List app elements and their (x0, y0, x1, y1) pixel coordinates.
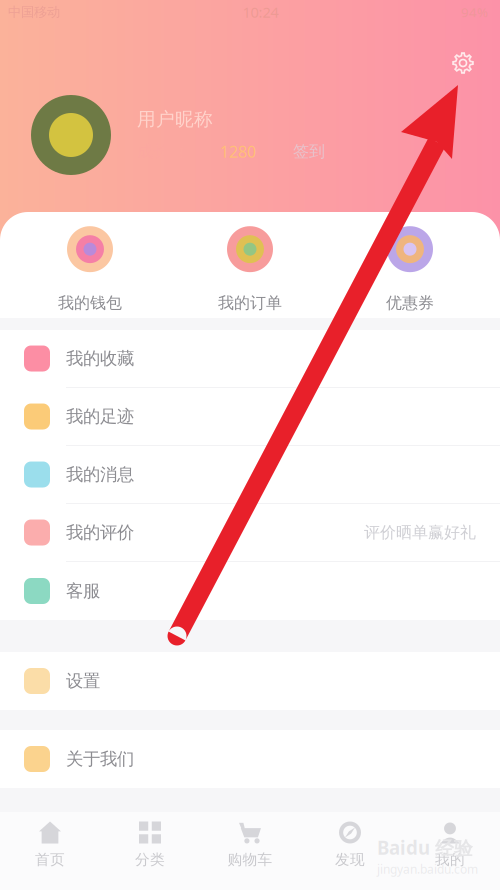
staticText: 我的订单 (218, 293, 282, 313)
button[interactable]: 我的消息 (0, 446, 500, 504)
button[interactable]: 我的钱包 (10, 226, 170, 313)
button[interactable]: 首页 (0, 802, 100, 890)
staticText: 购物车 (227, 850, 272, 868)
staticText: 分类 (135, 850, 165, 868)
staticText: 我的足迹 (66, 406, 134, 427)
button[interactable]: 关于我们 (0, 730, 500, 788)
button[interactable]: 客服 (0, 562, 500, 620)
staticText: 我的 (435, 850, 465, 868)
staticText: 设置 (66, 670, 100, 692)
button[interactable]: 发现 (300, 802, 400, 890)
staticText: 中国移动 (8, 4, 60, 20)
staticText: 我的消息 (66, 464, 134, 485)
staticText: 优惠券 (386, 293, 434, 313)
button[interactable]: 设置 (0, 652, 500, 710)
button[interactable]: 我的评价 (0, 504, 500, 562)
button[interactable]: 分类 (100, 802, 200, 890)
staticText: 签到 (293, 142, 325, 161)
staticText: 我的评价 (66, 522, 134, 543)
staticText: 评价晒单赢好礼 (364, 523, 476, 542)
staticText: 用户昵称 (137, 108, 213, 131)
staticText: Baidu 经验 (377, 835, 473, 860)
staticText: 首页 (35, 850, 65, 868)
staticText: jingyan.baidu.com (377, 861, 478, 877)
button[interactable]: 我的订单 (170, 226, 330, 313)
staticText: 客服 (66, 580, 100, 602)
button[interactable]: 我的收藏 (0, 330, 500, 388)
staticText: 发现 (335, 850, 365, 868)
staticText: 我的钱包 (58, 293, 122, 313)
button[interactable]: 优惠券 (330, 226, 490, 313)
staticText: 我的收藏 (66, 348, 134, 369)
button[interactable]: 购物车 (200, 802, 300, 890)
staticText: 94% (461, 3, 488, 21)
staticText: 1280 (220, 141, 256, 162)
staticText: 10:24 (242, 2, 278, 22)
button[interactable]: 我的 (400, 802, 500, 890)
button[interactable]: 我的足迹 (0, 388, 500, 446)
button[interactable]: Settings (443, 43, 483, 83)
staticText: 关于我们 (66, 748, 134, 770)
